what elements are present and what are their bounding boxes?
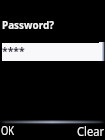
staticText: **** — [2, 43, 25, 58]
staticText: Clear — [77, 123, 105, 139]
button[interactable]: Clear — [70, 122, 105, 140]
button[interactable]: **** — [2, 43, 102, 61]
staticText: OK — [1, 122, 14, 138]
staticText: Password? — [2, 18, 54, 32]
button[interactable]: OK — [0, 121, 26, 139]
